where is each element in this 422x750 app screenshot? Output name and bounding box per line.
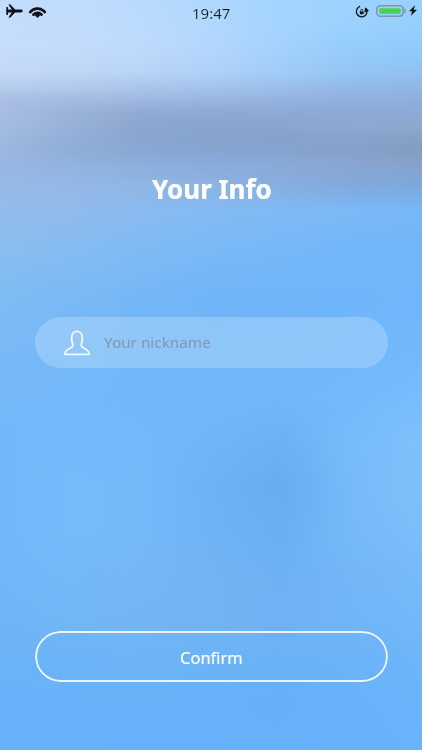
button[interactable]: Your nickname bbox=[35, 317, 388, 368]
staticText: Your Info bbox=[152, 171, 272, 206]
staticText: Confirm bbox=[180, 646, 243, 668]
staticText: 19:47 bbox=[192, 3, 231, 23]
other: Airplane mode bbox=[6, 4, 23, 18]
staticText: Your nickname bbox=[104, 332, 211, 353]
button[interactable]: Confirm bbox=[35, 631, 388, 682]
other: Wi-Fi bbox=[29, 5, 46, 18]
